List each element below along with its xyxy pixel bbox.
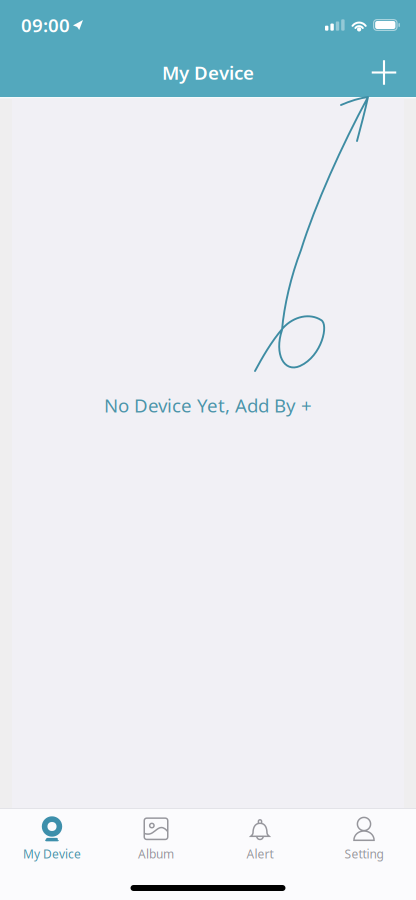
- staticText: Setting: [344, 846, 383, 862]
- button[interactable]: My Device: [0, 809, 104, 870]
- staticText: Album: [138, 846, 174, 862]
- button[interactable]: Setting: [312, 809, 416, 870]
- staticText: No Device Yet, Add By +: [104, 393, 312, 418]
- staticText: 09:00: [21, 13, 70, 37]
- staticText: Alert: [246, 846, 273, 862]
- button[interactable]: Album: [104, 809, 208, 870]
- button[interactable]: Add device: [362, 50, 406, 94]
- button[interactable]: Alert: [208, 809, 312, 870]
- staticText: My Device: [23, 846, 81, 862]
- staticText: My Device: [162, 60, 254, 85]
